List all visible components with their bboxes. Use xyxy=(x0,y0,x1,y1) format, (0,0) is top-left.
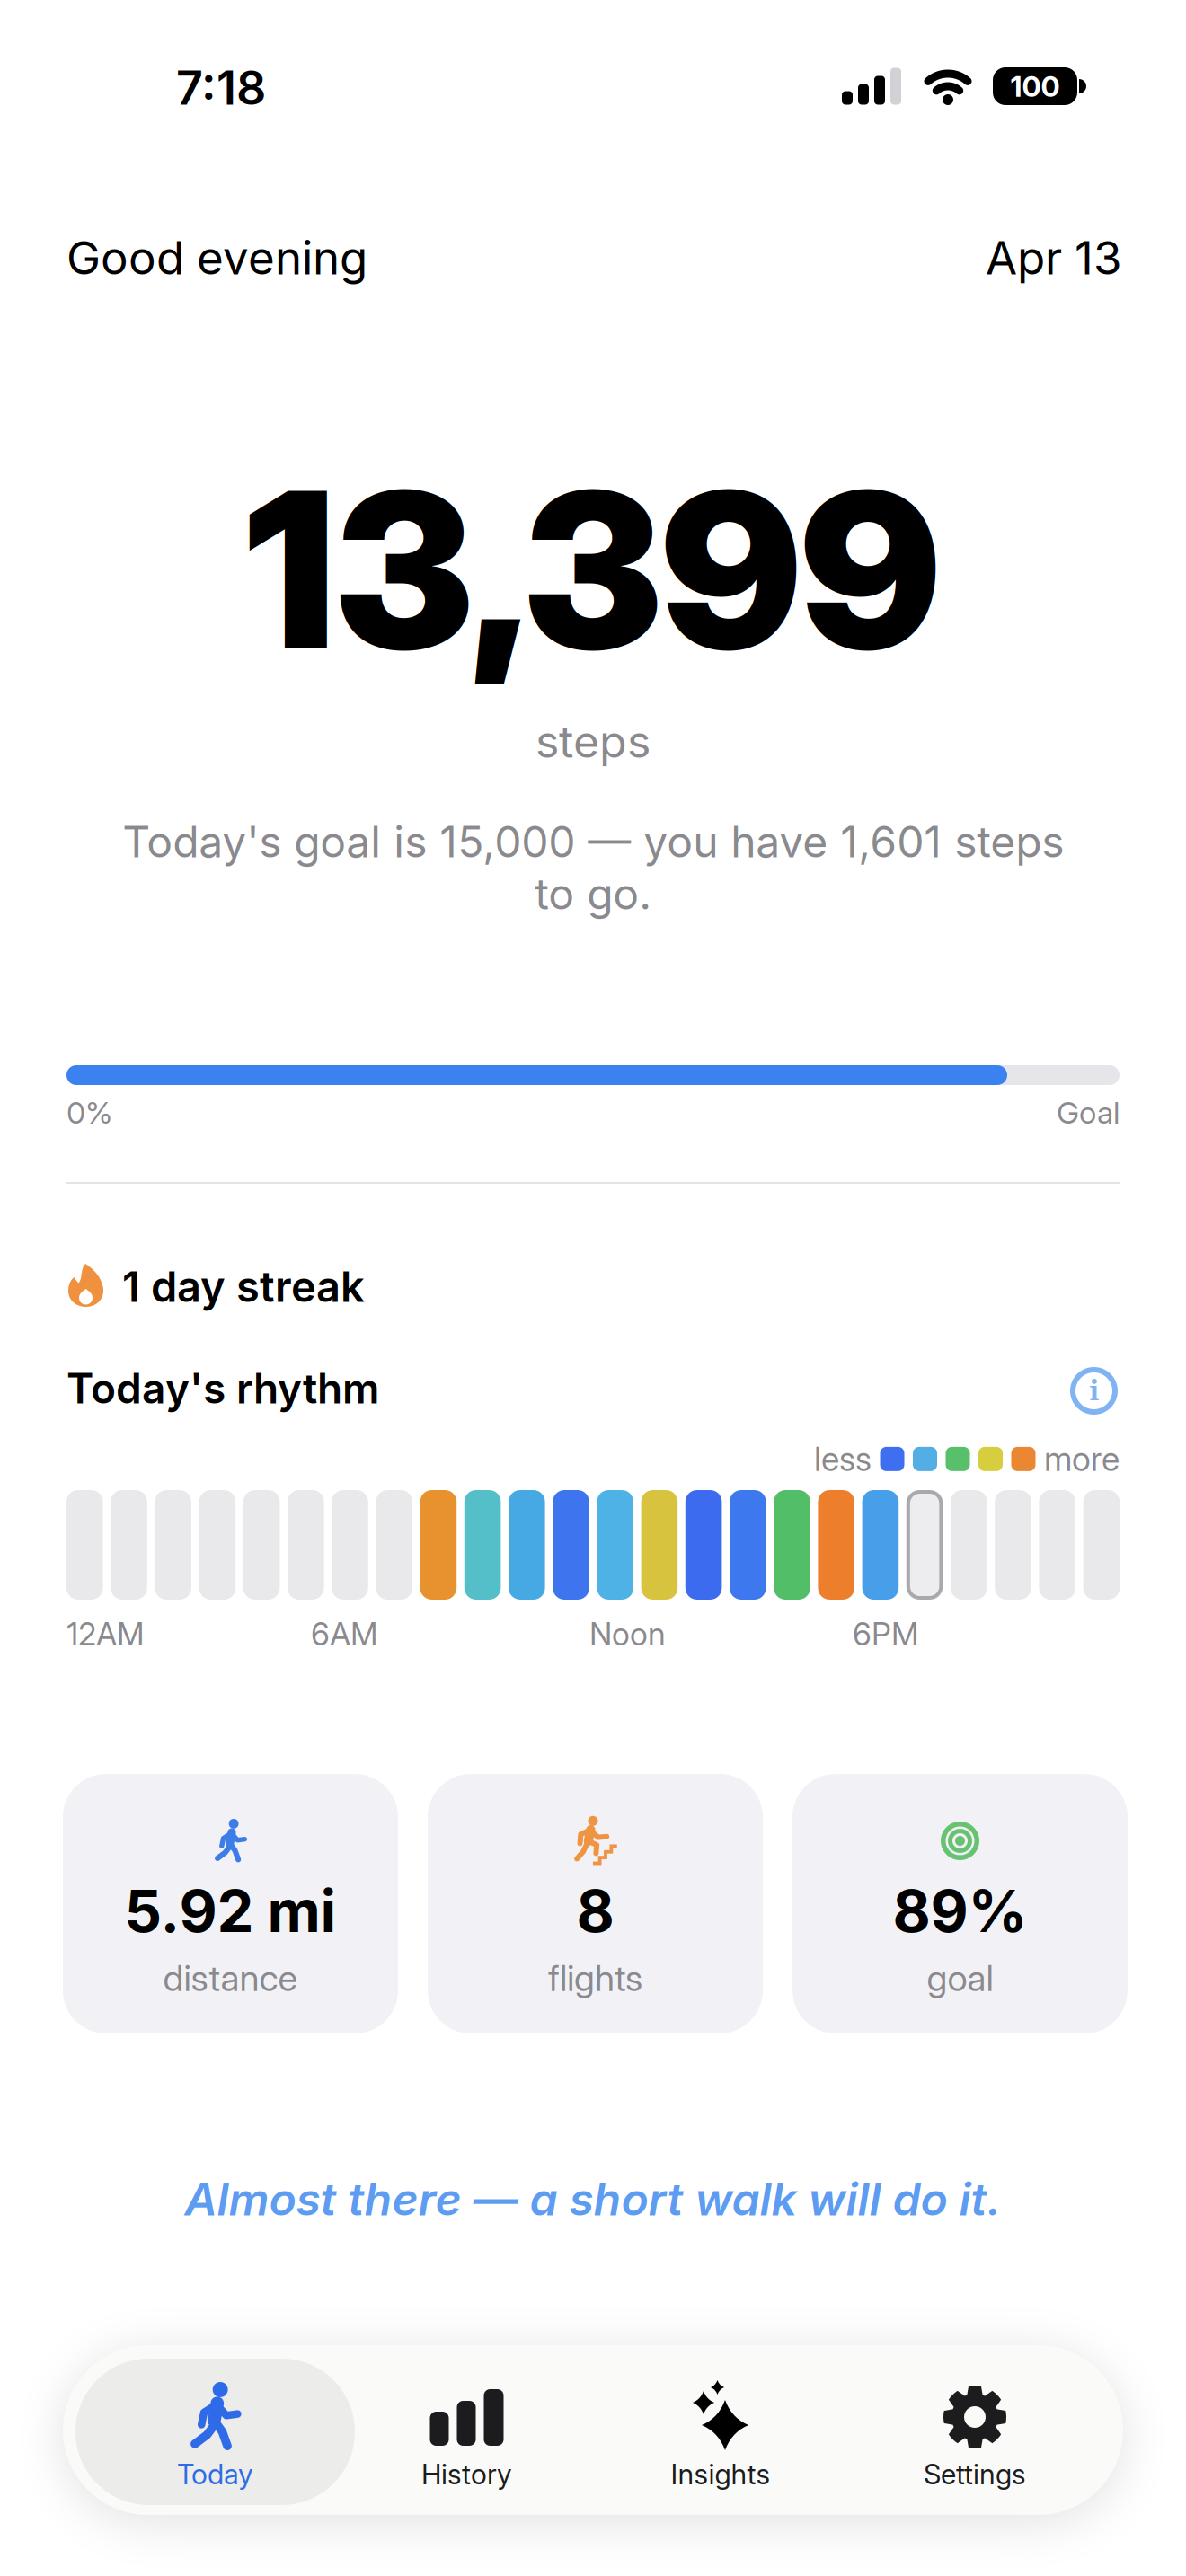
staticText: 8 xyxy=(576,1875,614,1946)
staticText: goal xyxy=(927,1956,993,2000)
button[interactable]: Info xyxy=(1070,1367,1118,1415)
staticText: Settings xyxy=(924,2457,1026,2491)
staticText: Insights xyxy=(671,2457,770,2491)
staticText: 0% xyxy=(66,1094,112,1131)
staticText: flights xyxy=(548,1956,642,2000)
staticText: 100 xyxy=(1010,69,1060,104)
staticText: 13,399 xyxy=(246,439,940,700)
staticText: i xyxy=(1089,1374,1099,1410)
staticText: steps xyxy=(535,714,651,768)
staticText: 6PM xyxy=(853,1615,919,1653)
button[interactable]: Today xyxy=(98,2345,332,2515)
button[interactable]: Insights xyxy=(604,2345,837,2515)
staticText: Today's rhythm xyxy=(66,1363,379,1413)
staticText: 7:18 xyxy=(176,59,266,116)
staticText: Good evening xyxy=(66,230,367,285)
button[interactable]: History xyxy=(350,2345,584,2515)
button[interactable]: Settings xyxy=(858,2345,1092,2515)
staticText: 6AM xyxy=(311,1615,378,1653)
staticText: 5.92 mi xyxy=(124,1875,336,1946)
staticText: 89% xyxy=(893,1875,1027,1946)
staticText: more xyxy=(1044,1439,1120,1479)
staticText: Apr 13 xyxy=(986,230,1122,285)
staticText: Today xyxy=(177,2457,253,2491)
staticText: Today's goal is 15,000 — you have 1,601 … xyxy=(122,816,1064,920)
staticText: History xyxy=(421,2457,512,2491)
staticText: 1 day streak xyxy=(122,1261,365,1312)
staticText: less xyxy=(814,1439,872,1479)
staticText: 12AM xyxy=(66,1615,145,1653)
staticText: Goal xyxy=(1057,1094,1120,1131)
staticText: Noon xyxy=(589,1615,666,1653)
staticText: distance xyxy=(163,1956,298,2000)
staticText: Almost there — a short walk will do it. xyxy=(185,2172,1001,2226)
